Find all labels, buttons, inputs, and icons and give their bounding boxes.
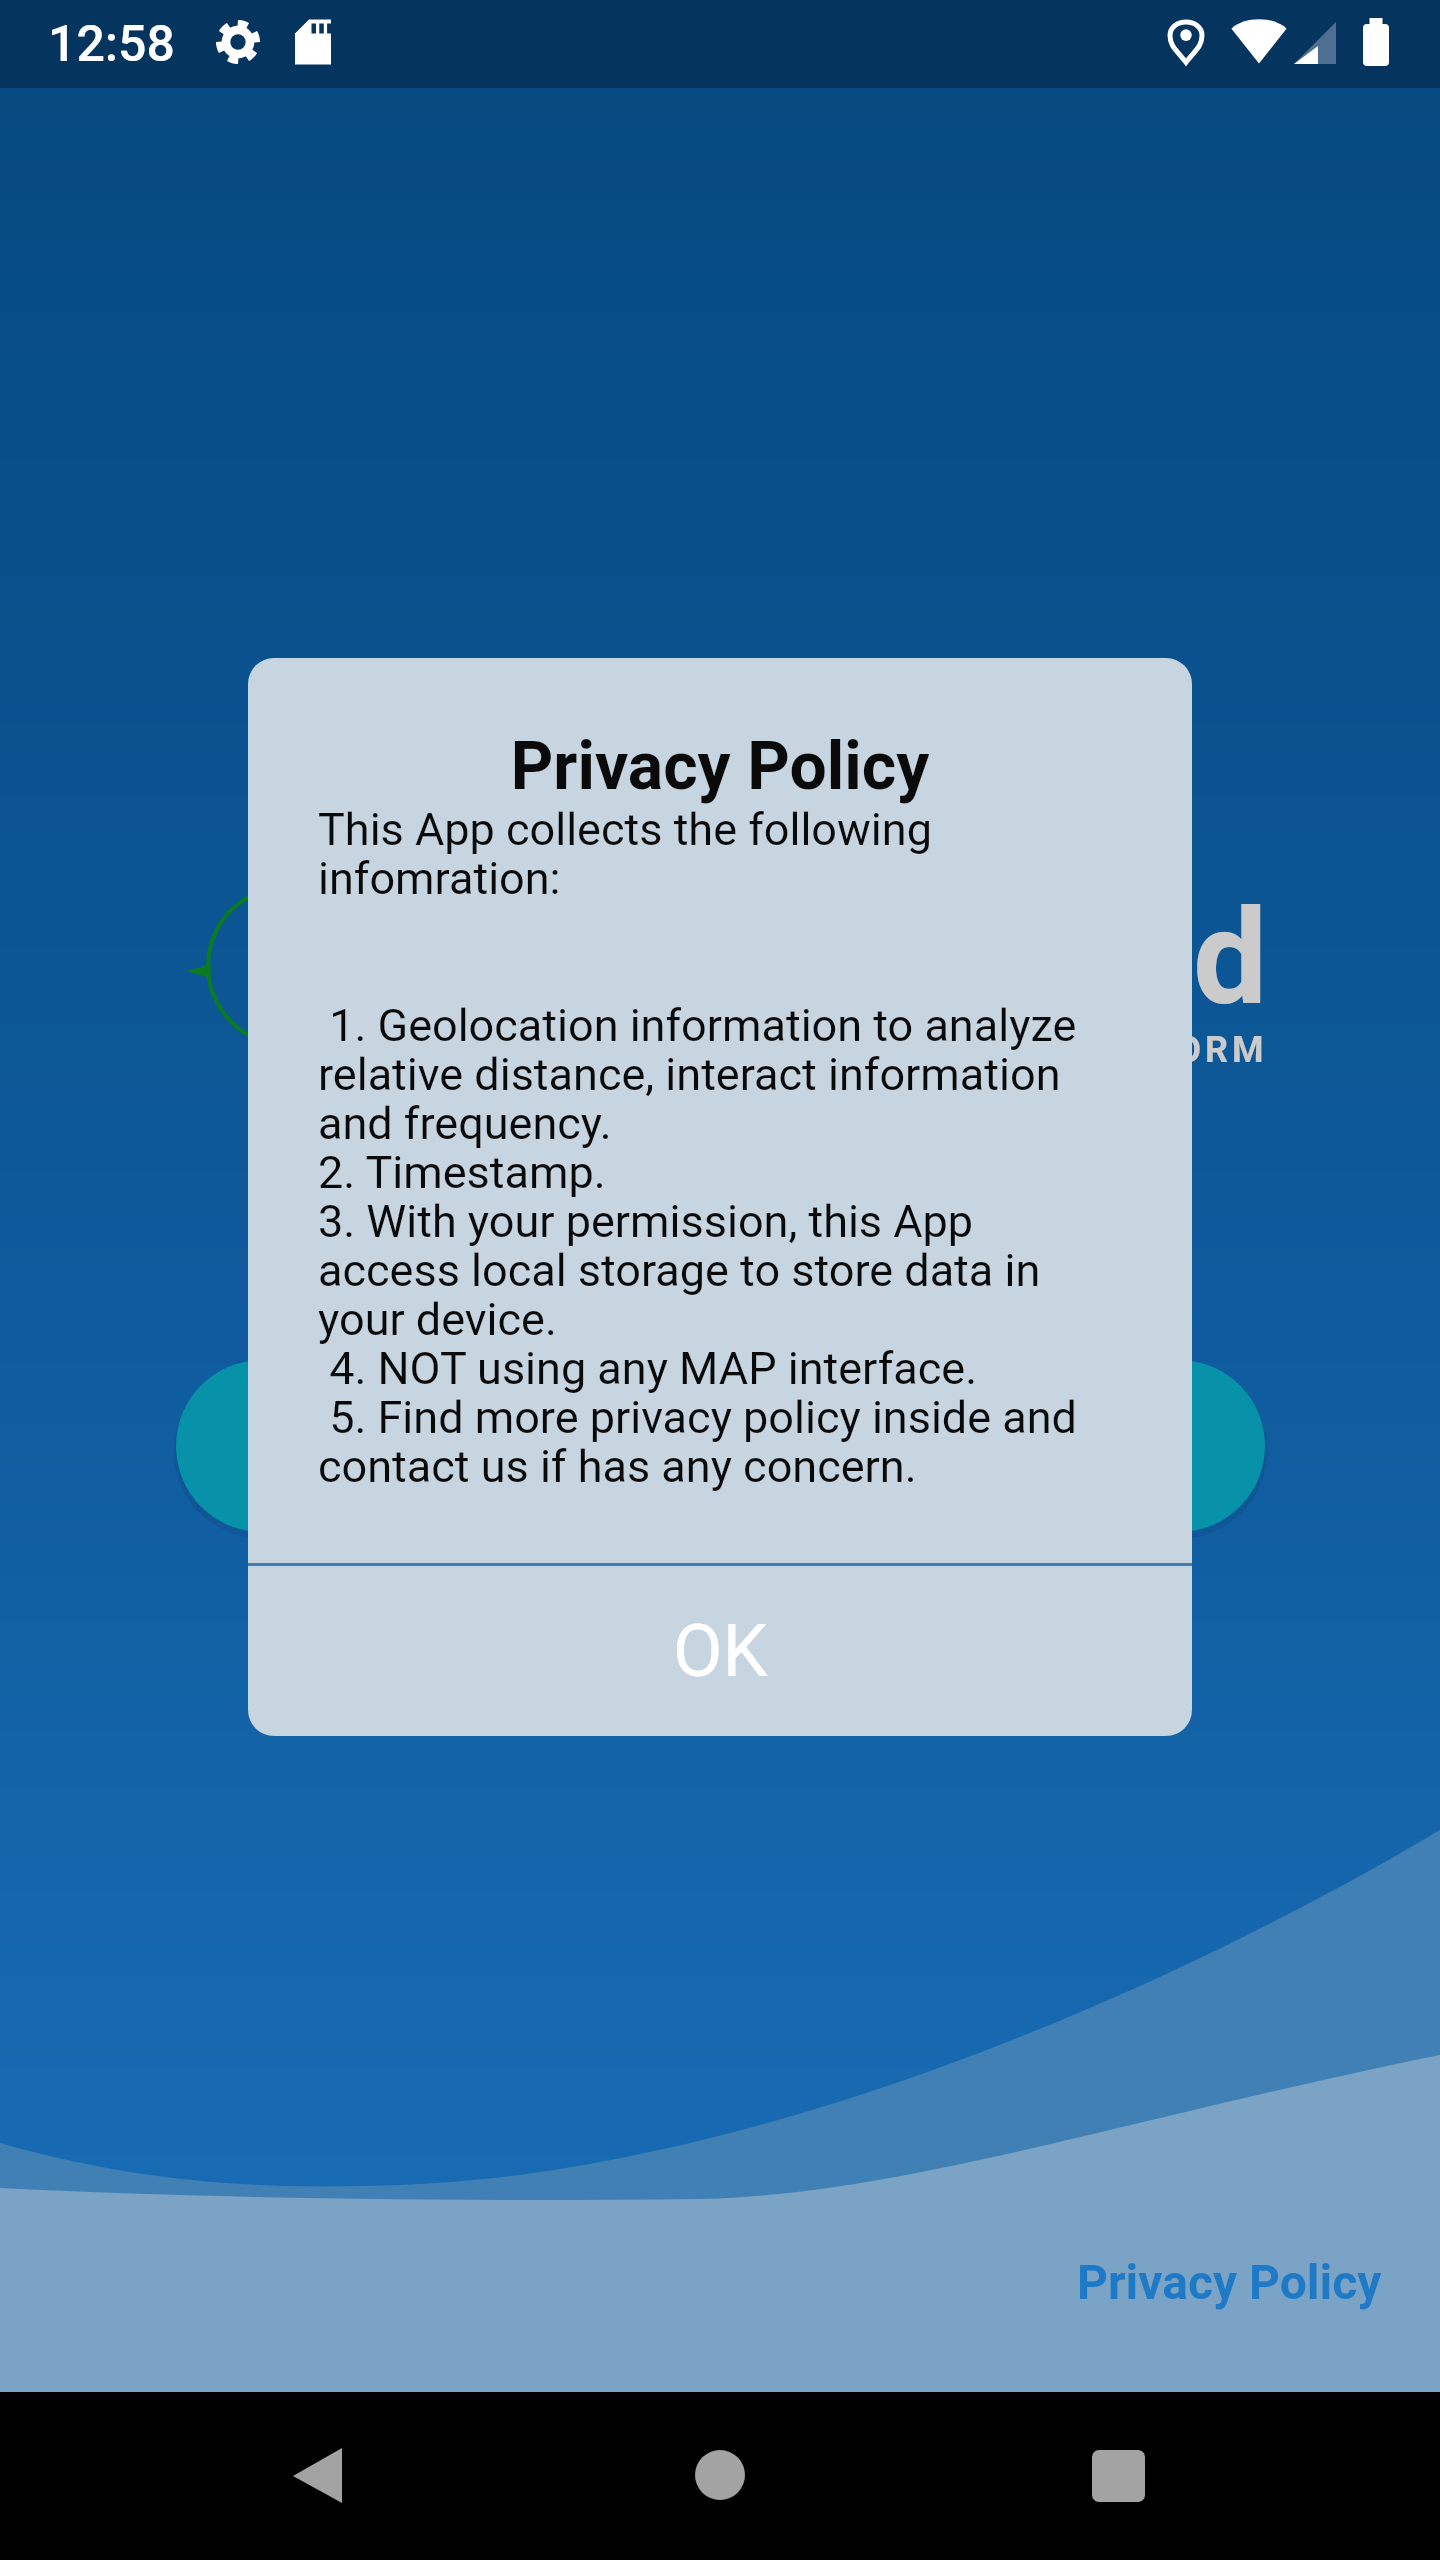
button[interactable]: OK bbox=[248, 1566, 1192, 1736]
staticText: Privacy Policy bbox=[248, 728, 1192, 805]
button[interactable]: Home bbox=[650, 2420, 790, 2535]
button[interactable]: Start bbox=[176, 1360, 1265, 1532]
staticText: Privacy Policy bbox=[1077, 2254, 1382, 2310]
staticText: 12:58 bbox=[48, 15, 175, 74]
button[interactable]: Recent apps bbox=[1048, 2420, 1188, 2535]
button[interactable]: Privacy Policy bbox=[1051, 2232, 1408, 2332]
staticText: PLATFORM bbox=[1049, 1029, 1268, 1071]
button[interactable]: Back bbox=[248, 2420, 388, 2535]
staticText: OK bbox=[673, 1609, 768, 1693]
staticText: Cloud bbox=[923, 881, 1268, 1036]
staticText: This App collects the following infomrat… bbox=[318, 803, 1192, 1493]
